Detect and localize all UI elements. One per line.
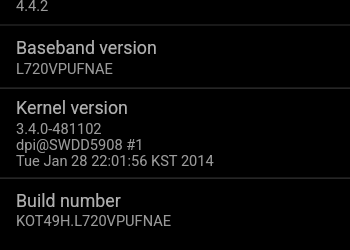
button[interactable]: Build number bbox=[0, 178, 350, 250]
staticText: dpi@SWDD5908 #1 bbox=[16, 136, 144, 153]
staticText: Tue Jan 28 22:01:56 KST 2014 bbox=[16, 152, 214, 169]
staticText: 4.4.2 bbox=[16, 0, 49, 14]
button[interactable]: Kernel version bbox=[0, 88, 350, 178]
button[interactable]: 4.4.2 bbox=[0, 0, 350, 25]
staticText: Kernel version bbox=[16, 97, 128, 118]
staticText: L720VPUFNAE bbox=[16, 60, 113, 77]
staticText: Build number bbox=[16, 190, 121, 211]
staticText: 3.4.0-481102 bbox=[16, 120, 102, 137]
staticText: Baseband version bbox=[16, 37, 157, 58]
button[interactable]: Baseband version bbox=[0, 25, 350, 88]
staticText: KOT49H.L720VPUFNAE bbox=[16, 212, 172, 229]
